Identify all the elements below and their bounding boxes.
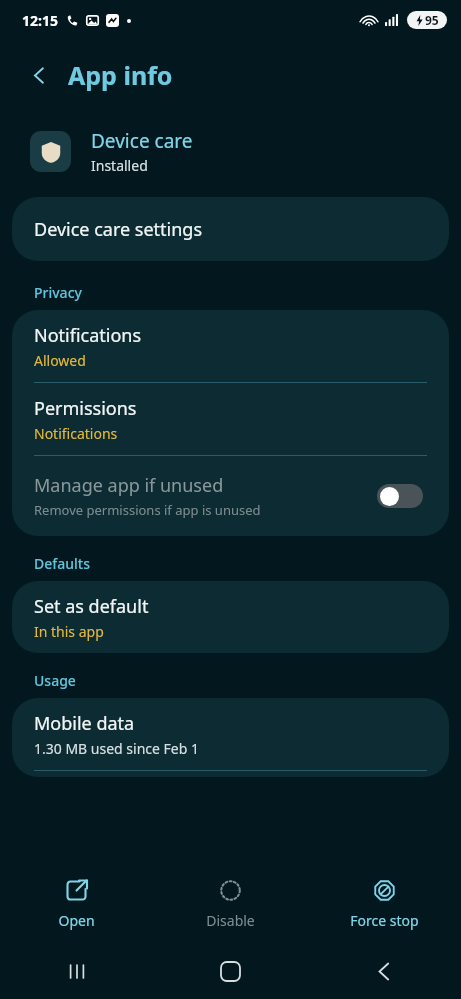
staticText: 1.30 MB used since Feb 1 <box>34 739 200 758</box>
staticText: Open <box>58 911 95 930</box>
staticText: Notifications <box>34 323 142 348</box>
button[interactable]: Device care settings <box>12 197 449 261</box>
button[interactable]: Back <box>22 58 56 92</box>
staticText: Set as default <box>34 594 149 619</box>
staticText: Manage app if unused <box>34 473 224 498</box>
staticText: Remove permissions if app is unused <box>34 501 261 519</box>
staticText: Device care <box>91 128 193 154</box>
staticText: Device care settings <box>34 217 203 242</box>
button[interactable]: Set as default <box>12 581 449 653</box>
button[interactable]: Disable <box>153 878 307 930</box>
button[interactable]: Back <box>307 943 461 999</box>
staticText: 12:15 <box>22 11 58 30</box>
staticText: Permissions <box>34 396 137 421</box>
staticText: Notifications <box>34 424 118 443</box>
staticText: Mobile data <box>34 711 135 736</box>
staticText: Force stop <box>350 911 419 930</box>
staticText: Privacy <box>34 283 82 302</box>
button[interactable]: Home <box>153 943 307 999</box>
button[interactable]: Manage app if unused <box>12 456 449 536</box>
button[interactable]: Notifications <box>12 310 449 382</box>
staticText: Defaults <box>34 554 90 573</box>
staticText: 95 <box>425 12 439 28</box>
button[interactable]: Open <box>0 878 153 930</box>
staticText: Allowed <box>34 351 86 370</box>
staticText: App info <box>68 58 173 92</box>
button[interactable]: Mobile data <box>12 698 449 770</box>
staticText: Installed <box>91 156 148 175</box>
button[interactable]: Recent apps <box>0 943 153 999</box>
staticText: Disable <box>206 911 255 930</box>
button[interactable]: Permissions <box>12 383 449 455</box>
staticText: Usage <box>34 671 76 690</box>
button[interactable]: Force stop <box>307 878 461 930</box>
staticText: In this app <box>34 622 104 641</box>
